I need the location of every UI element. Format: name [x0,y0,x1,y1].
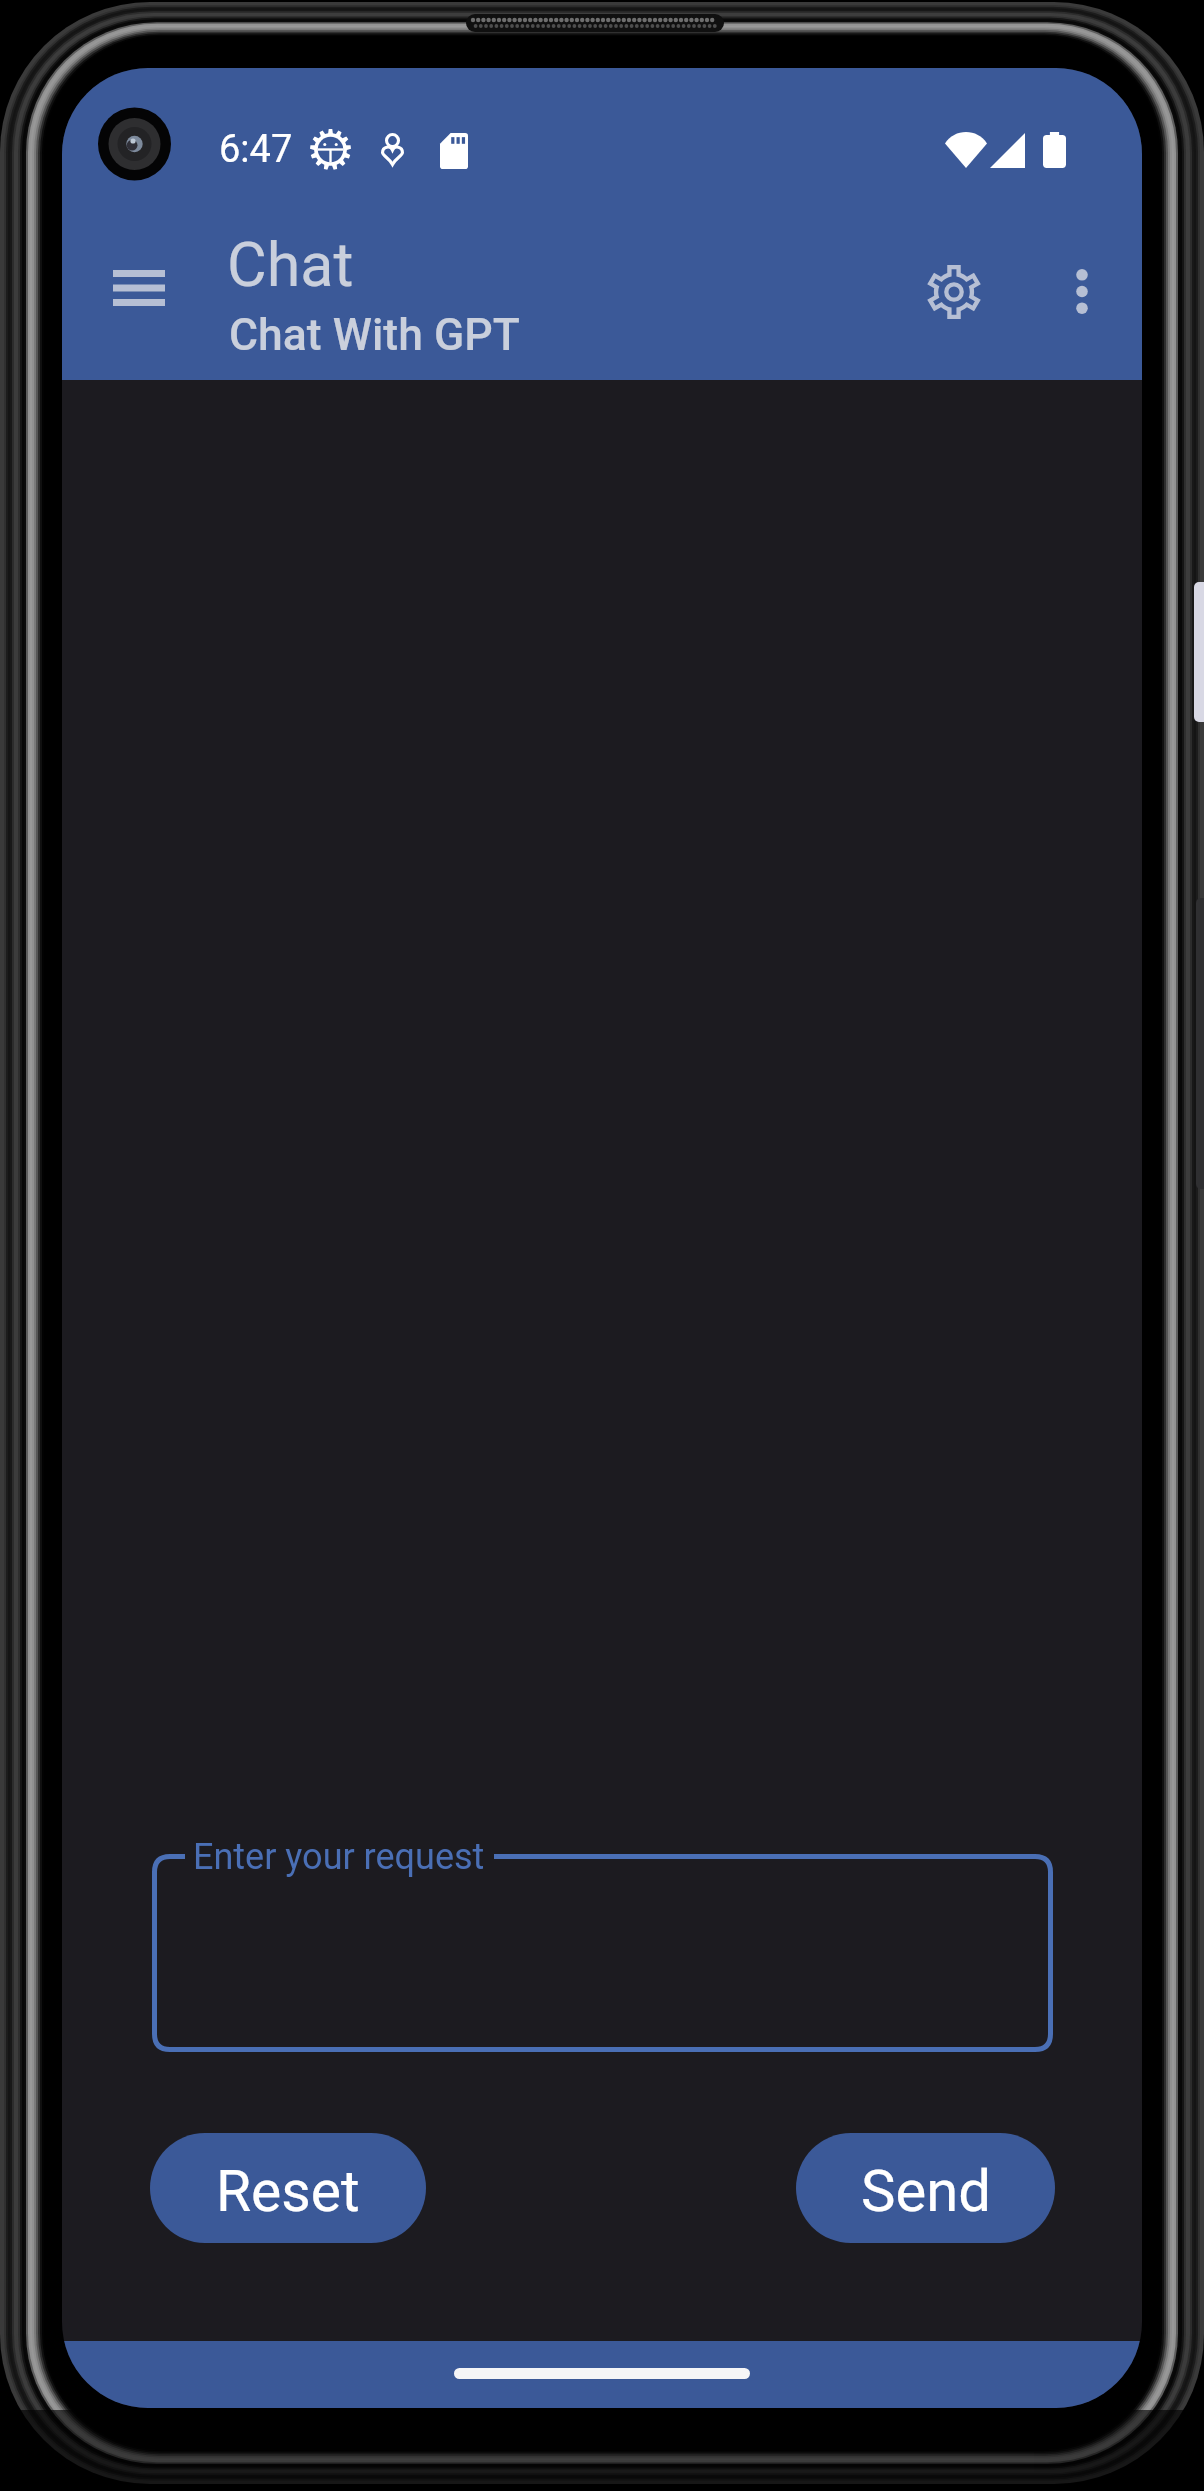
staticText: Chat [227,229,354,300]
staticText: Send [861,2157,991,2225]
staticText: Reset [216,2158,360,2225]
button[interactable]: Enter your request [152,1854,1053,2052]
staticText: Enter your request [193,1836,485,1878]
button[interactable]: Send [796,2133,1055,2243]
staticText: 6:47 [219,127,293,172]
staticText: Chat With GPT [229,309,520,361]
button[interactable]: More options [1026,236,1137,347]
button[interactable]: Reset [150,2133,426,2243]
button[interactable]: Settings [898,236,1009,347]
button[interactable]: Open navigation drawer [84,247,194,329]
